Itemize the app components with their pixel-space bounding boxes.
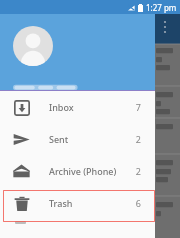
staticText: 1:27 pm — [146, 2, 177, 13]
button[interactable]: Sent — [0, 123, 155, 155]
staticText: 6 — [135, 197, 141, 209]
staticText: Archive (Phone) — [49, 165, 117, 177]
button[interactable]: Trash — [0, 187, 155, 219]
staticText: 2 — [135, 133, 141, 145]
button[interactable]: More options — [155, 14, 180, 44]
staticText: Sent — [49, 133, 69, 145]
staticText: 2 — [135, 165, 141, 177]
staticText: Trash — [49, 197, 73, 209]
staticText: Inbox — [49, 101, 74, 113]
button[interactable] — [0, 14, 155, 91]
button[interactable]: Inbox — [0, 91, 155, 123]
staticText: 7 — [135, 101, 141, 113]
button[interactable]: Archive (Phone) — [0, 155, 155, 187]
